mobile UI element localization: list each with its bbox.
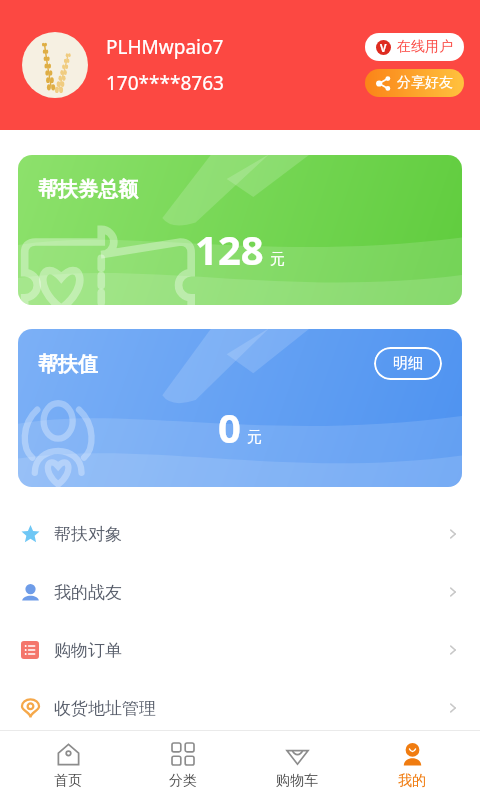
- staticText: 我的战友: [54, 582, 446, 603]
- button[interactable]: V: [365, 33, 464, 61]
- button[interactable]: 帮扶值: [18, 329, 462, 487]
- staticText: 128: [195, 222, 264, 276]
- button[interactable]: 我的: [366, 731, 458, 800]
- button[interactable]: 帮扶对象: [0, 505, 480, 563]
- staticText: 明细: [393, 354, 423, 373]
- staticText: PLHMwpaio7: [106, 34, 224, 60]
- button[interactable]: 购物订单: [0, 621, 480, 679]
- staticText: 帮扶对象: [54, 524, 446, 545]
- staticText: 在线用户: [397, 38, 453, 56]
- staticText: 元: [247, 428, 262, 447]
- button[interactable]: 购物车: [251, 731, 343, 800]
- button[interactable]: 明细: [374, 347, 442, 380]
- staticText: 首页: [54, 772, 82, 790]
- staticText: 我的: [398, 772, 426, 790]
- button[interactable]: 分类: [137, 731, 229, 800]
- staticText: 0: [218, 400, 241, 454]
- button[interactable]: 帮扶券总额: [18, 155, 462, 305]
- staticText: 帮扶券总额: [38, 177, 138, 202]
- button[interactable]: 分享好友: [365, 69, 464, 97]
- staticText: 分享好友: [397, 74, 453, 92]
- staticText: V: [380, 41, 387, 55]
- staticText: 170****8763: [106, 70, 224, 96]
- staticText: 购物订单: [54, 640, 446, 661]
- staticText: 帮扶值: [38, 352, 98, 377]
- staticText: 分类: [169, 772, 197, 790]
- button[interactable]: 我的战友: [0, 563, 480, 621]
- staticText: 收货地址管理: [54, 698, 446, 719]
- staticText: 购物车: [276, 772, 318, 790]
- button[interactable]: 首页: [22, 731, 114, 800]
- button[interactable]: Profile avatar: [22, 32, 88, 98]
- staticText: 元: [270, 250, 285, 269]
- button[interactable]: 收货地址管理: [0, 679, 480, 737]
